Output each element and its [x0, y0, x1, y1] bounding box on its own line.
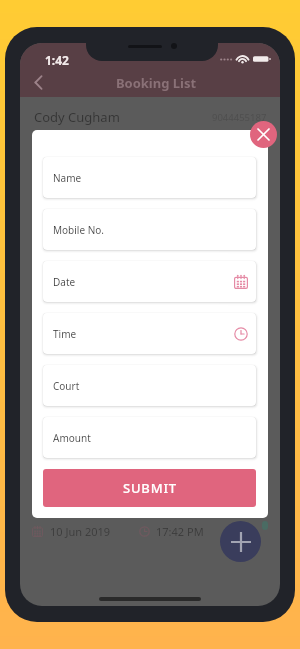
staticText: Time: [53, 327, 77, 341]
button[interactable]: SUBMIT: [43, 469, 256, 507]
staticText: Booking List: [44, 74, 268, 92]
button[interactable]: Amount: [43, 417, 256, 458]
button[interactable]: Add booking: [220, 521, 261, 562]
button[interactable]: Mobile No.: [43, 209, 256, 250]
staticText: 10 Jun 2019: [50, 524, 111, 539]
staticText: 9044455187: [212, 111, 267, 124]
button[interactable]: Back: [20, 66, 56, 99]
button[interactable]: Time: [43, 313, 256, 354]
button[interactable]: Date: [43, 261, 256, 302]
staticText: SUBMIT: [123, 479, 177, 497]
staticText: Date: [53, 275, 76, 289]
staticText: 1:42: [45, 52, 69, 68]
staticText: Amount: [53, 431, 91, 445]
staticText: 17:42 PM: [156, 524, 204, 539]
button[interactable]: Close: [250, 121, 277, 148]
button[interactable]: Court: [43, 365, 256, 406]
staticText: Name: [53, 171, 82, 185]
staticText: Court: [53, 379, 80, 393]
button[interactable]: Name: [43, 157, 256, 198]
staticText: Cody Cugham: [34, 108, 120, 126]
staticText: Mobile No.: [53, 223, 104, 237]
